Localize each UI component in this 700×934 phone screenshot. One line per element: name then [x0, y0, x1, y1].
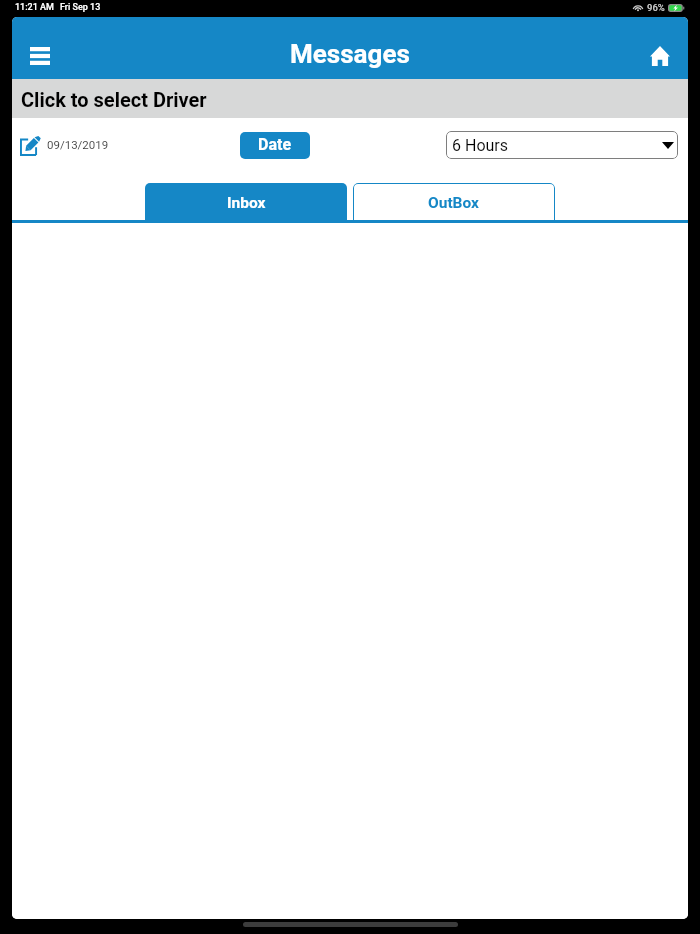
button[interactable]: Inbox — [145, 183, 347, 223]
staticText: Date — [258, 135, 292, 154]
button[interactable]: 6 Hours — [446, 131, 678, 159]
staticText: Click to select Driver — [21, 88, 207, 111]
staticText: Fri Sep 13 — [60, 2, 101, 13]
button[interactable]: Home — [638, 34, 682, 78]
staticText: OutBox — [428, 194, 480, 212]
staticText: 11:21 AM — [15, 2, 54, 13]
button[interactable]: Date — [240, 132, 310, 159]
button[interactable]: OutBox — [353, 183, 555, 223]
button[interactable]: Click to select Driver — [12, 79, 688, 118]
button[interactable]: 09/13/2019 — [20, 134, 109, 156]
staticText: Inbox — [227, 194, 266, 212]
staticText: 96% — [647, 2, 665, 13]
staticText: Messages — [290, 39, 410, 69]
button[interactable]: Menu — [18, 34, 62, 78]
staticText: 09/13/2019 — [47, 138, 109, 151]
staticText: 6 Hours — [452, 136, 508, 155]
